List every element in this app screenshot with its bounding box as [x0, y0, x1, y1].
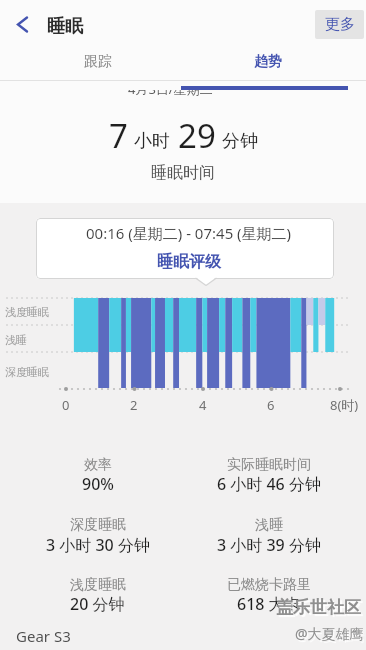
- staticText: 分钟: [222, 130, 258, 153]
- staticText: 7: [109, 113, 128, 158]
- staticText: 睡眠时间: [151, 163, 215, 183]
- staticText: 29: [178, 113, 216, 158]
- staticText: 00:16 (星期二) - 07:45 (星期二): [86, 223, 292, 243]
- staticText: 4: [199, 396, 207, 414]
- staticText: 2: [130, 396, 138, 414]
- staticText: 3 小时 30 分钟: [46, 534, 150, 556]
- button[interactable]: 趋势: [179, 47, 356, 77]
- button[interactable]: 跟踪: [9, 47, 186, 77]
- button[interactable]: [176, 456, 361, 516]
- staticText: Gear S3: [16, 626, 71, 646]
- staticText: 4月3日/星期二: [128, 80, 213, 98]
- staticText: 浅度睡眠: [70, 576, 126, 594]
- staticText: 睡眠评级: [157, 252, 221, 272]
- button[interactable]: [8, 10, 38, 40]
- staticText: 3 小时 39 分钟: [217, 534, 321, 556]
- staticText: 跟踪: [84, 53, 112, 71]
- staticText: 6: [267, 396, 275, 414]
- staticText: 已燃烧卡路里: [227, 576, 311, 594]
- staticText: @大夏雄鹰: [295, 624, 364, 643]
- button[interactable]: 更多: [315, 10, 364, 39]
- button[interactable]: [5, 456, 190, 516]
- staticText: 浅度睡眠: [5, 305, 49, 319]
- staticText: 睡眠: [47, 15, 83, 38]
- button[interactable]: [36, 218, 334, 279]
- staticText: 实际睡眠时间: [227, 456, 311, 474]
- staticText: 效率: [84, 456, 112, 474]
- staticText: 趋势: [254, 53, 282, 71]
- staticText: 更多: [325, 15, 355, 34]
- button[interactable]: [176, 516, 361, 576]
- staticText: 小时: [134, 130, 170, 153]
- staticText: 盖乐世社区: [276, 597, 361, 618]
- button[interactable]: [5, 576, 190, 636]
- staticText: 618 大卡: [237, 593, 301, 615]
- staticText: 20 分钟: [70, 593, 125, 615]
- button[interactable]: [5, 516, 190, 576]
- staticText: 浅睡: [255, 516, 283, 534]
- staticText: 6 小时 46 分钟: [217, 473, 321, 495]
- staticText: 浅睡: [5, 333, 27, 347]
- button[interactable]: [176, 576, 361, 636]
- staticText: 0: [62, 396, 70, 414]
- staticText: 深度睡眠: [70, 516, 126, 534]
- staticText: 8(时): [330, 396, 359, 414]
- staticText: 90%: [82, 473, 114, 495]
- staticText: 深度睡眠: [5, 365, 49, 379]
